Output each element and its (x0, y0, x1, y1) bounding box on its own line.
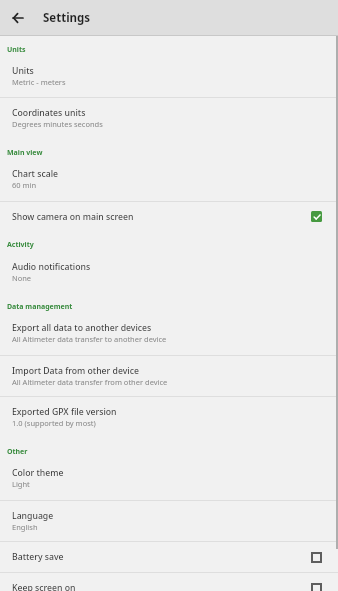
staticText: None (12, 273, 32, 283)
staticText: Units (12, 65, 34, 77)
staticText: English (12, 522, 38, 532)
staticText: All Altimeter data transfer from other d… (12, 377, 168, 387)
staticText: Show camera on main screen (12, 211, 134, 223)
button[interactable]: Chart scale (0, 159, 338, 201)
staticText: Battery save (12, 551, 64, 563)
staticText: Main view (7, 148, 43, 158)
staticText: Activity (7, 240, 34, 250)
staticText: Color theme (12, 467, 64, 479)
button[interactable]: Units (0, 56, 338, 97)
button[interactable]: Color theme (0, 458, 338, 500)
staticText: Other (7, 447, 28, 457)
button[interactable]: Exported GPX file version (0, 396, 338, 438)
button[interactable]: Audio notifications (0, 252, 338, 293)
button[interactable]: Import Data from other device (0, 355, 338, 396)
button[interactable]: Language (0, 500, 338, 541)
button[interactable]: Keep screen on (0, 572, 338, 591)
staticText: Coordinates units (12, 107, 86, 119)
staticText: Language (12, 510, 54, 522)
staticText: Exported GPX file version (12, 406, 117, 418)
staticText: Light (12, 479, 30, 489)
button[interactable]: Show camera on main screen (0, 201, 338, 231)
button[interactable]: Battery save (0, 541, 338, 572)
staticText: Data management (7, 302, 73, 312)
staticText: Chart scale (12, 168, 58, 180)
staticText: Units (7, 45, 26, 55)
staticText: 1.0 (supported by most) (12, 418, 96, 428)
staticText: Audio notifications (12, 261, 91, 273)
staticText: Settings (43, 10, 91, 26)
staticText: 60 min (12, 180, 37, 190)
staticText: Degrees minutes seconds (12, 119, 103, 129)
staticText: All Altimeter data transfer to another d… (12, 334, 167, 344)
button[interactable]: Coordinates units (0, 97, 338, 139)
staticText: Import Data from other device (12, 365, 139, 377)
button[interactable]: Back (0, 0, 35, 35)
staticText: Metric - meters (12, 77, 66, 87)
staticText: Export all data to another devices (12, 322, 152, 334)
staticText: Keep screen on (12, 582, 76, 591)
button[interactable]: Export all data to another devices (0, 313, 338, 355)
